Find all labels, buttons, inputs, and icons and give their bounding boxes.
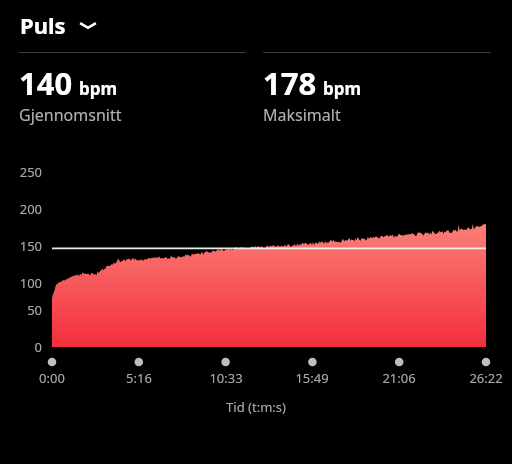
other: Expand metric selector: [77, 18, 99, 32]
staticText: Gjennomsnitt: [19, 104, 122, 126]
staticText: 10:33: [196, 369, 256, 387]
staticText: Tid (t:m:s): [0, 398, 512, 416]
staticText: 50: [0, 301, 42, 319]
staticText: 140: [19, 62, 73, 104]
staticText: Puls: [20, 10, 66, 40]
staticText: 250: [0, 163, 42, 181]
staticText: 200: [0, 200, 42, 218]
staticText: Maksimalt: [263, 104, 341, 126]
staticText: bpm: [323, 77, 362, 100]
staticText: 26:22: [456, 369, 512, 387]
staticText: 178: [263, 62, 317, 104]
staticText: 21:06: [369, 369, 429, 387]
staticText: 0: [0, 338, 42, 356]
staticText: 100: [0, 274, 42, 292]
button[interactable]: Puls: [18, 8, 101, 42]
staticText: 150: [0, 237, 42, 255]
staticText: bpm: [79, 77, 118, 100]
staticText: 15:49: [282, 369, 342, 387]
staticText: 5:16: [109, 369, 169, 387]
staticText: 0:00: [22, 369, 82, 387]
button[interactable]: 140: [19, 52, 246, 126]
button[interactable]: 178: [263, 52, 491, 126]
